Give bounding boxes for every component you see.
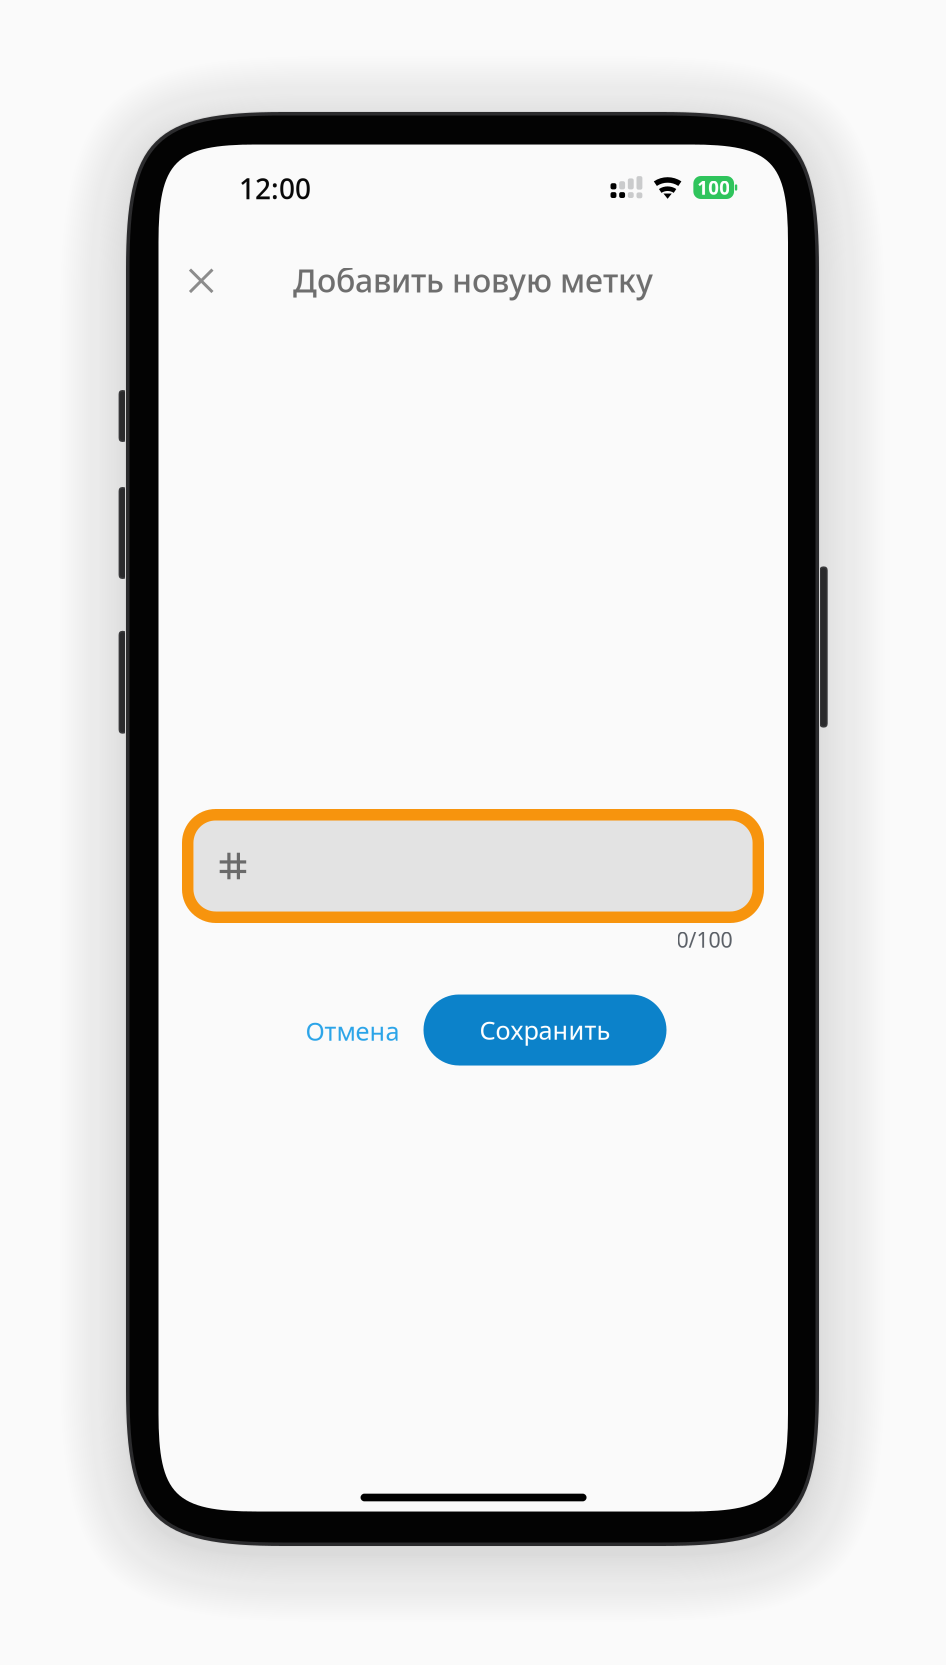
staticText: 12:00 <box>239 170 311 207</box>
button[interactable]: Сохранить <box>423 994 666 1065</box>
staticText: Отмена <box>305 1014 399 1048</box>
staticText: Сохранить <box>479 1013 610 1047</box>
button[interactable]: Закрыть <box>174 254 228 308</box>
staticText: 100 <box>697 175 730 200</box>
staticText: Добавить новую метку <box>293 259 653 301</box>
button[interactable]: Отмена <box>292 1003 412 1059</box>
staticText: 0/100 <box>676 925 732 954</box>
